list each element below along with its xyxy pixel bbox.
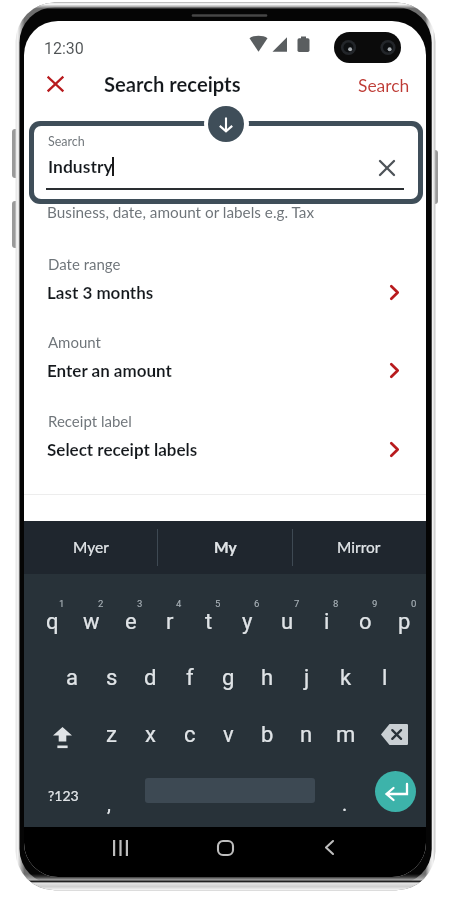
button[interactable]: Home bbox=[217, 840, 234, 856]
staticText: ?123 bbox=[48, 787, 79, 804]
staticText: 0 bbox=[411, 598, 417, 609]
staticText: j bbox=[304, 665, 310, 691]
staticText: w bbox=[83, 609, 100, 635]
button[interactable]: r bbox=[150, 600, 189, 644]
button[interactable]: m bbox=[326, 713, 365, 757]
button[interactable]: Amount bbox=[24, 318, 426, 396]
staticText: l bbox=[382, 665, 388, 691]
staticText: t bbox=[205, 609, 213, 635]
staticText: 2 bbox=[98, 598, 104, 609]
staticText: Business, date, amount or labels e.g. Ta… bbox=[47, 203, 315, 221]
button[interactable]: x bbox=[131, 713, 170, 757]
staticText: b bbox=[261, 722, 274, 748]
button[interactable]: Myer bbox=[24, 521, 158, 574]
button[interactable]: n bbox=[287, 713, 326, 757]
button[interactable]: Receipt label bbox=[24, 397, 426, 475]
staticText: v bbox=[223, 722, 234, 748]
button[interactable]: g bbox=[209, 656, 248, 700]
staticText: p bbox=[398, 609, 411, 635]
staticText: 12:30 bbox=[44, 39, 84, 58]
staticText: i bbox=[324, 609, 330, 635]
button[interactable]: Close bbox=[40, 68, 71, 99]
button[interactable]: z bbox=[92, 713, 131, 757]
button[interactable]: Mirror bbox=[292, 521, 426, 574]
staticText: Industry bbox=[48, 156, 113, 177]
staticText: u bbox=[281, 609, 294, 635]
button[interactable]: . bbox=[325, 781, 364, 825]
button[interactable]: q bbox=[33, 600, 72, 644]
staticText: r bbox=[166, 609, 174, 635]
staticText: 8 bbox=[333, 598, 339, 609]
staticText: s bbox=[106, 665, 118, 691]
button[interactable]: l bbox=[365, 656, 404, 700]
button[interactable]: e bbox=[111, 600, 150, 644]
staticText: Search bbox=[48, 134, 85, 149]
button[interactable]: d bbox=[131, 656, 170, 700]
button[interactable]: , bbox=[89, 781, 128, 825]
staticText: 5 bbox=[215, 598, 221, 609]
staticText: Search receipts bbox=[104, 72, 241, 96]
button[interactable]: y bbox=[228, 600, 267, 644]
button[interactable]: s bbox=[92, 656, 131, 700]
button[interactable]: Recents bbox=[113, 840, 128, 856]
staticText: 6 bbox=[254, 598, 260, 609]
staticText: Select receipt labels bbox=[47, 439, 198, 459]
button[interactable]: Back bbox=[325, 840, 334, 855]
staticText: Enter an amount bbox=[47, 360, 172, 380]
staticText: , bbox=[107, 792, 111, 815]
button[interactable]: i bbox=[307, 600, 346, 644]
staticText: 9 bbox=[372, 598, 378, 609]
button[interactable]: Enter bbox=[375, 771, 416, 812]
button[interactable]: k bbox=[326, 656, 365, 700]
button[interactable]: Collapse search bbox=[208, 106, 244, 142]
staticText: k bbox=[340, 665, 352, 691]
button[interactable]: Clear search bbox=[373, 154, 400, 181]
staticText: Search bbox=[358, 75, 410, 96]
staticText: f bbox=[186, 665, 194, 691]
staticText: . bbox=[342, 792, 348, 815]
staticText: g bbox=[222, 665, 235, 691]
staticText: c bbox=[184, 722, 196, 748]
staticText: n bbox=[300, 722, 313, 748]
staticText: Amount bbox=[48, 333, 101, 351]
button[interactable]: My bbox=[158, 521, 292, 574]
button[interactable]: Date range bbox=[24, 240, 426, 318]
button[interactable]: u bbox=[268, 600, 307, 644]
staticText: Mirror bbox=[337, 538, 381, 557]
button[interactable]: ?123 bbox=[45, 784, 81, 806]
staticText: 4 bbox=[176, 598, 182, 609]
staticText: q bbox=[46, 609, 59, 635]
button[interactable]: v bbox=[209, 713, 248, 757]
staticText: Receipt label bbox=[48, 412, 132, 430]
button[interactable]: Search bbox=[349, 69, 419, 102]
staticText: Last 3 months bbox=[47, 282, 154, 302]
button[interactable]: b bbox=[248, 713, 287, 757]
button[interactable]: Shift bbox=[43, 718, 81, 758]
staticText: My bbox=[214, 538, 237, 557]
staticText: 3 bbox=[137, 598, 143, 609]
staticText: Date range bbox=[48, 255, 121, 273]
staticText: a bbox=[66, 665, 78, 691]
button[interactable]: Search bbox=[34, 126, 418, 199]
button[interactable]: w bbox=[72, 600, 111, 644]
button[interactable]: c bbox=[170, 713, 209, 757]
button[interactable]: Backspace bbox=[381, 724, 408, 745]
staticText: Myer bbox=[73, 538, 109, 557]
staticText: y bbox=[242, 609, 253, 635]
staticText: d bbox=[144, 665, 157, 691]
staticText: 1 bbox=[59, 598, 65, 609]
button[interactable]: o bbox=[346, 600, 385, 644]
button[interactable]: j bbox=[287, 656, 326, 700]
staticText: h bbox=[261, 665, 274, 691]
button[interactable]: h bbox=[248, 656, 287, 700]
staticText: m bbox=[336, 722, 356, 748]
staticText: e bbox=[125, 609, 137, 635]
button[interactable]: a bbox=[52, 656, 91, 700]
staticText: 7 bbox=[294, 598, 300, 609]
button[interactable]: t bbox=[189, 600, 228, 644]
button[interactable]: f bbox=[170, 656, 209, 700]
staticText: z bbox=[106, 722, 117, 748]
button[interactable]: p bbox=[385, 600, 424, 644]
staticText: x bbox=[145, 722, 156, 748]
